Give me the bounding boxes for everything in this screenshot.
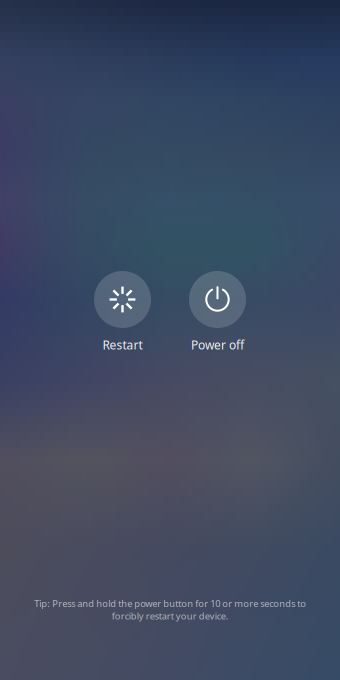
staticText: Tip: Press and hold the power button for…: [34, 597, 306, 622]
button[interactable]: Power off: [170, 271, 265, 353]
staticText: Power off: [191, 337, 244, 353]
button[interactable]: Restart: [75, 271, 170, 353]
staticText: Restart: [102, 337, 142, 353]
